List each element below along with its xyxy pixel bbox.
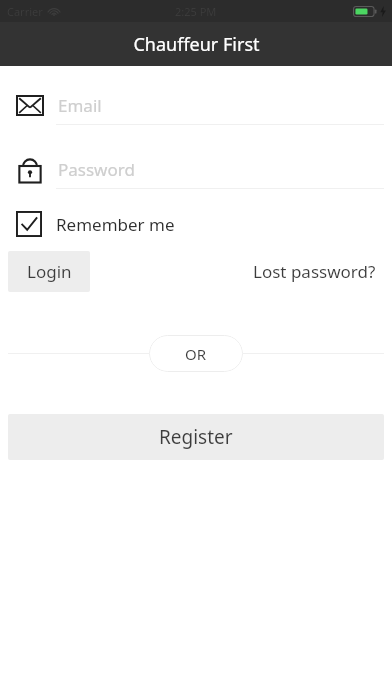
staticText: Register <box>159 424 233 450</box>
staticText: 2:25 PM <box>175 4 217 19</box>
staticText: OR <box>185 344 207 364</box>
button[interactable]: Password <box>0 150 392 188</box>
button[interactable]: Remember me <box>0 211 392 237</box>
button[interactable]: Lost password? <box>245 252 384 291</box>
button[interactable]: Email <box>0 86 392 124</box>
staticText: Carrier <box>7 4 43 19</box>
staticText: Remember me <box>56 213 175 236</box>
staticText: Password <box>58 158 135 181</box>
button[interactable]: OR <box>149 335 243 372</box>
staticText: Email <box>58 94 102 117</box>
staticText: Chauffeur First <box>133 32 260 57</box>
button[interactable]: Register <box>8 414 384 460</box>
staticText: Lost password? <box>253 260 376 283</box>
staticText: Login <box>27 260 72 283</box>
button[interactable]: Login <box>8 251 90 292</box>
